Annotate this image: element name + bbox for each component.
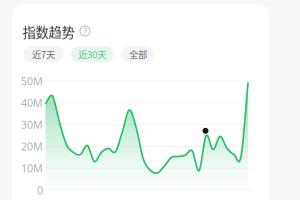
button[interactable]: About index trend <box>80 26 90 36</box>
staticText: 指数趋势 <box>22 22 74 41</box>
staticText: 30M <box>21 117 43 132</box>
button[interactable]: 近30天 <box>71 46 114 62</box>
staticText: 近30天 <box>78 47 106 61</box>
staticText: ? <box>83 25 87 37</box>
staticText: 40M <box>21 96 43 110</box>
button[interactable]: 全部 <box>121 46 154 62</box>
staticText: 10M <box>21 161 43 175</box>
staticText: 全部 <box>129 47 147 61</box>
staticText: 20M <box>21 139 43 153</box>
button[interactable]: 近7天 <box>23 46 63 62</box>
staticText: 近7天 <box>32 47 55 61</box>
staticText: 0 <box>37 183 43 197</box>
staticText: 50M <box>21 74 43 88</box>
